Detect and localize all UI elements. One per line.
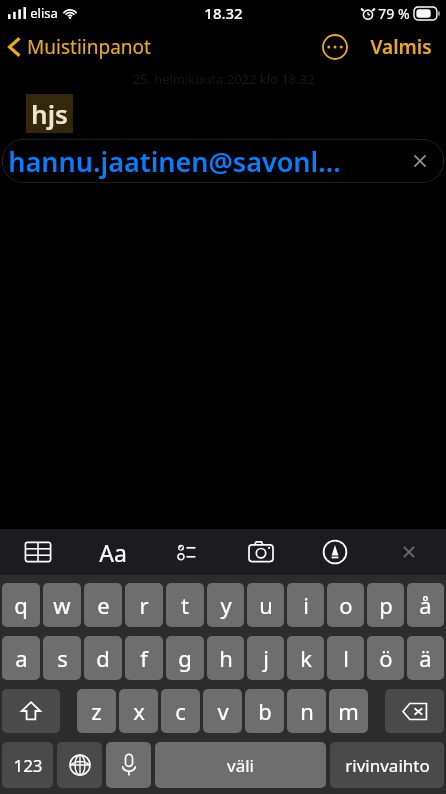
- button[interactable]: x: [119, 689, 158, 733]
- staticText: rivinvaihto: [345, 754, 430, 777]
- staticText: m: [338, 696, 359, 726]
- button[interactable]: Close keyboard: [372, 529, 446, 575]
- button[interactable]: Camera: [224, 529, 298, 575]
- button[interactable]: k: [287, 636, 324, 680]
- staticText: k: [300, 643, 312, 673]
- button[interactable]: u: [247, 583, 284, 627]
- staticText: g: [178, 643, 192, 673]
- button[interactable]: väli: [155, 742, 326, 788]
- staticText: z: [91, 696, 102, 726]
- staticText: p: [379, 590, 393, 620]
- staticText: e: [97, 590, 110, 620]
- staticText: Muistiinpanot: [27, 34, 151, 60]
- staticText: Valmis: [370, 34, 432, 60]
- button[interactable]: e: [84, 583, 122, 627]
- button[interactable]: f: [125, 636, 163, 680]
- staticText: hannu.jaatinen@savonl…: [8, 143, 341, 180]
- staticText: a: [15, 643, 28, 673]
- button[interactable]: l: [327, 636, 364, 680]
- button[interactable]: h: [207, 636, 244, 680]
- button[interactable]: p: [367, 583, 404, 627]
- button[interactable]: 123: [2, 742, 53, 788]
- button[interactable]: ä: [407, 636, 444, 680]
- staticText: ö: [379, 643, 393, 673]
- button[interactable]: z: [77, 689, 116, 733]
- staticText: n: [300, 696, 314, 726]
- staticText: h: [219, 643, 233, 673]
- button[interactable]: ö: [367, 636, 404, 680]
- staticText: x: [133, 696, 145, 726]
- staticText: elisa: [30, 4, 58, 22]
- button[interactable]: Aa: [75, 537, 150, 568]
- staticText: v: [217, 696, 229, 726]
- button[interactable]: Dictate: [106, 742, 151, 788]
- staticText: o: [339, 590, 353, 620]
- staticText: hjs: [31, 96, 68, 131]
- button[interactable]: v: [203, 689, 242, 733]
- staticText: j: [263, 643, 269, 673]
- button[interactable]: Backspace: [385, 689, 444, 733]
- button[interactable]: w: [43, 583, 81, 627]
- button[interactable]: Shift: [2, 689, 60, 733]
- staticText: 123: [13, 754, 43, 777]
- staticText: y: [220, 590, 232, 620]
- staticText: 79 %: [378, 4, 410, 23]
- button[interactable]: j: [247, 636, 284, 680]
- button[interactable]: o: [327, 583, 364, 627]
- button[interactable]: Valmis: [362, 28, 440, 66]
- button[interactable]: n: [287, 689, 326, 733]
- button[interactable]: g: [166, 636, 204, 680]
- staticText: d: [96, 643, 110, 673]
- button[interactable]: b: [245, 689, 284, 733]
- button[interactable]: More options: [316, 28, 354, 66]
- button[interactable]: Change keyboard: [57, 742, 102, 788]
- staticText: u: [259, 590, 273, 620]
- button[interactable]: Muistiinpanot: [0, 30, 159, 64]
- staticText: Aa: [99, 537, 127, 568]
- staticText: s: [57, 643, 68, 673]
- staticText: t: [181, 590, 189, 620]
- staticText: c: [175, 696, 186, 726]
- button[interactable]: Checklist: [150, 529, 224, 575]
- staticText: ä: [419, 643, 432, 673]
- staticText: l: [343, 643, 349, 673]
- button[interactable]: å: [407, 583, 444, 627]
- button[interactable]: c: [161, 689, 200, 733]
- button[interactable]: Clear: [406, 147, 434, 175]
- button[interactable]: hannu.jaatinen@savonl…: [2, 139, 444, 183]
- staticText: 18.32: [204, 3, 243, 23]
- staticText: i: [303, 590, 309, 620]
- staticText: q: [14, 590, 28, 620]
- button[interactable]: i: [287, 583, 324, 627]
- button[interactable]: t: [166, 583, 204, 627]
- staticText: b: [258, 696, 272, 726]
- staticText: f: [140, 643, 148, 673]
- button[interactable]: Markup: [298, 529, 372, 575]
- button[interactable]: s: [43, 636, 81, 680]
- staticText: r: [139, 590, 149, 620]
- button[interactable]: Table: [0, 529, 75, 575]
- button[interactable]: m: [329, 689, 368, 733]
- button[interactable]: rivinvaihto: [330, 742, 444, 788]
- button[interactable]: r: [125, 583, 163, 627]
- button[interactable]: d: [84, 636, 122, 680]
- staticText: väli: [227, 754, 254, 777]
- staticText: 25. helmikuuta 2022 klo 18.32: [132, 70, 315, 88]
- staticText: å: [419, 590, 432, 620]
- button[interactable]: y: [207, 583, 244, 627]
- button[interactable]: a: [2, 636, 40, 680]
- staticText: w: [53, 590, 71, 620]
- button[interactable]: q: [2, 583, 40, 627]
